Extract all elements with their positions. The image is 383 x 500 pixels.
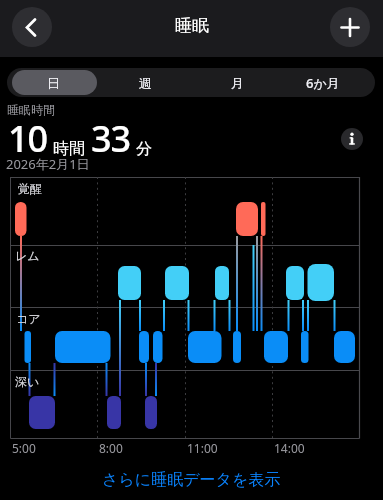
staticText: 8:00 — [99, 440, 123, 456]
button[interactable] — [341, 128, 363, 150]
staticText: 33 — [91, 114, 131, 163]
button[interactable]: 6か月 — [277, 68, 369, 97]
button[interactable] — [330, 7, 370, 47]
staticText: 6か月 — [306, 74, 340, 92]
staticText: 日 — [47, 75, 60, 91]
staticText: 5:00 — [12, 440, 36, 456]
staticText: 2026年2月1日 — [6, 155, 90, 173]
button[interactable]: 日 — [7, 68, 99, 97]
staticText: 10 — [8, 114, 48, 163]
staticText: 睡眠時間 — [7, 102, 55, 117]
button[interactable]: 月 — [191, 68, 283, 97]
button[interactable] — [12, 7, 52, 47]
staticText: 月 — [231, 75, 244, 91]
button[interactable] — [12, 70, 97, 95]
staticText: 週 — [139, 75, 152, 91]
staticText: さらに睡眠データを表示 — [102, 470, 281, 490]
staticText: レム — [15, 248, 40, 263]
staticText: 14:00 — [274, 440, 305, 456]
button[interactable]: 週 — [99, 68, 191, 97]
staticText: 深い — [15, 374, 40, 389]
button[interactable]: さらに睡眠データを表示 — [98, 466, 285, 494]
staticText: 睡眠 — [175, 15, 209, 36]
staticText: 分 — [136, 139, 152, 159]
staticText: 時間 — [53, 139, 85, 159]
staticText: 11:00 — [187, 440, 218, 456]
staticText: 覚醒 — [18, 181, 42, 196]
staticText: コア — [16, 311, 41, 326]
